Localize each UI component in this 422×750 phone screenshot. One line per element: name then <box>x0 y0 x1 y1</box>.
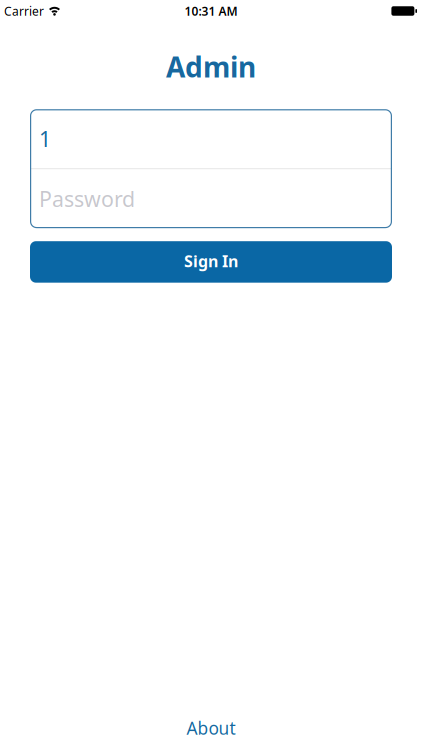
button[interactable]: About <box>176 712 245 743</box>
staticText: About <box>186 716 235 739</box>
textField[interactable]: 1 <box>30 109 392 168</box>
staticText: Password <box>39 184 135 213</box>
staticText: 10:31 AM <box>184 3 237 19</box>
button[interactable]: Sign In <box>30 241 392 283</box>
staticText: Admin <box>166 48 256 85</box>
textField[interactable]: Password <box>30 169 392 228</box>
staticText: Carrier <box>4 3 44 19</box>
staticText: Sign In <box>184 250 238 271</box>
staticText: 1 <box>39 124 51 153</box>
